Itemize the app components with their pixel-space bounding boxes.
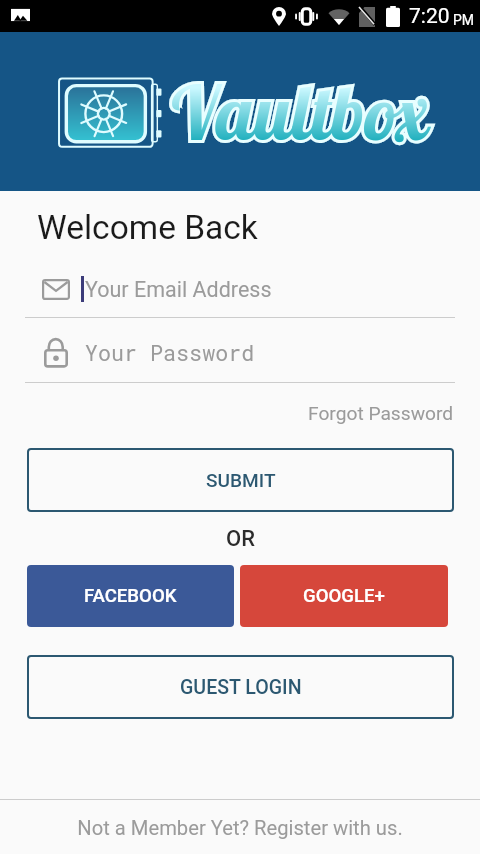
button[interactable]: Forgot Password <box>270 398 454 428</box>
staticText: Forgot Password <box>308 402 454 425</box>
staticText: OR <box>226 526 255 550</box>
staticText: GOOGLE+ <box>303 585 385 607</box>
staticText: Not a Member Yet? Register with us. <box>77 816 403 840</box>
staticText: SUBMIT <box>206 469 276 491</box>
staticText: FACEBOOK <box>84 585 177 607</box>
button[interactable]: SUBMIT <box>27 448 454 512</box>
staticText: Your Password <box>85 338 255 367</box>
staticText: GUEST LOGIN <box>180 676 302 699</box>
staticText: Your Email Address <box>85 277 272 302</box>
staticText: PM <box>453 12 475 28</box>
staticText: Vaultbox <box>168 66 427 159</box>
button[interactable]: FACEBOOK <box>27 565 234 627</box>
button[interactable]: Not a Member Yet? Register with us. <box>0 801 480 854</box>
button[interactable]: GOOGLE+ <box>240 565 448 627</box>
staticText: Welcome Back <box>37 208 258 247</box>
staticText: Vaultbox <box>168 66 427 159</box>
button[interactable]: GUEST LOGIN <box>27 655 454 719</box>
staticText: 7:20 <box>409 4 450 29</box>
